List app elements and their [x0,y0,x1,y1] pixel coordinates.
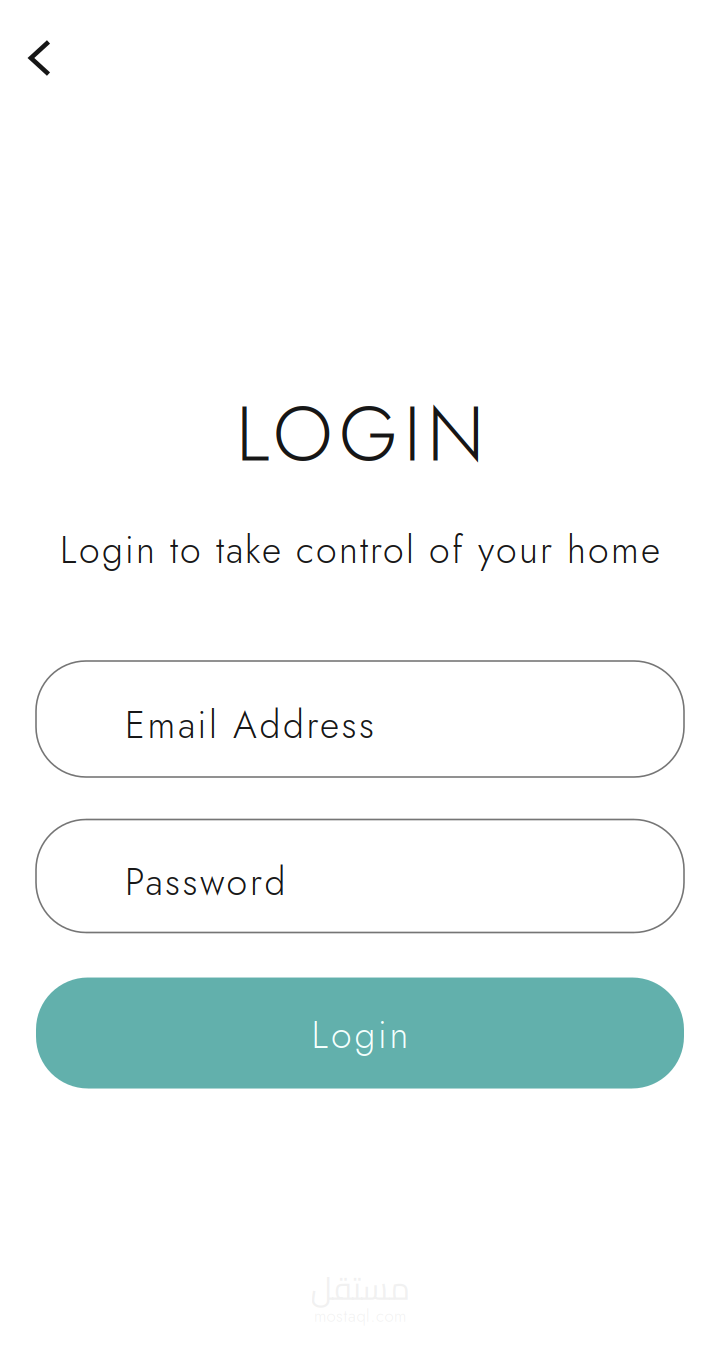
staticText: Login [311,1008,408,1062]
staticText: Password [125,855,285,909]
staticText: Login to take control of your home [60,523,660,577]
button[interactable]: Password [36,819,684,932]
staticText: Email Address [125,698,374,752]
button[interactable]: Email Address [36,661,684,777]
button[interactable]: Login [36,977,684,1088]
button[interactable]: Back [8,27,70,89]
staticText: LOGIN [236,379,484,489]
staticText: mostaql.com [314,1304,406,1328]
staticText: مستقل [310,1258,410,1318]
